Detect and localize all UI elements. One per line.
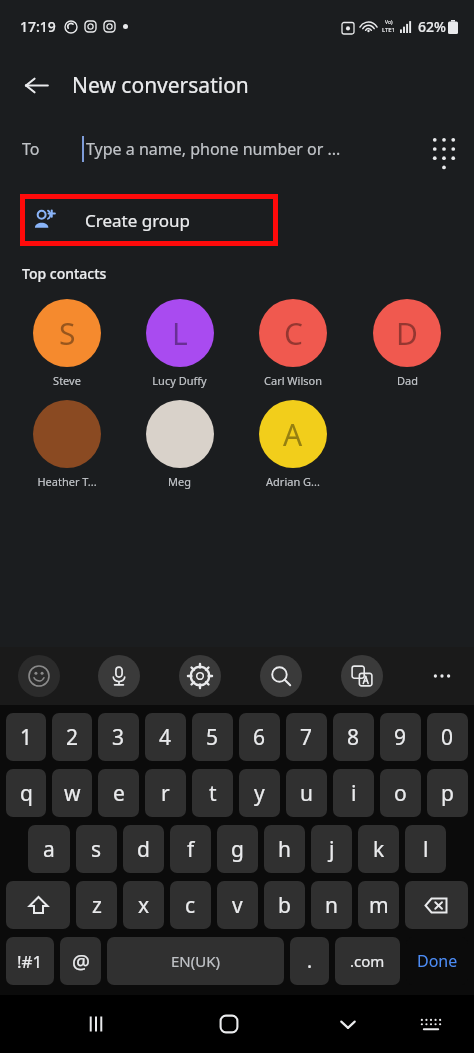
button[interactable]: 5 (192, 713, 233, 761)
button[interactable]: b (264, 881, 305, 929)
staticText: 5 (206, 723, 219, 752)
button[interactable]: Backspace (405, 881, 468, 929)
button[interactable]: Keyboard layout (408, 1001, 454, 1047)
button[interactable]: l (405, 825, 446, 873)
staticText: .com (350, 951, 385, 971)
staticText: a (43, 835, 55, 864)
button[interactable]: d (123, 825, 164, 873)
button[interactable]: r (145, 769, 186, 817)
button[interactable]: y (239, 769, 280, 817)
button[interactable]: v (217, 881, 258, 929)
staticText: q (20, 779, 33, 808)
button[interactable]: More options (422, 656, 462, 696)
button[interactable]: a (28, 825, 70, 873)
button[interactable]: To (0, 118, 474, 180)
button[interactable]: A (236, 400, 350, 489)
button[interactable]: Heather T... (10, 400, 123, 489)
button[interactable]: . (290, 937, 329, 985)
staticText: LTE1 (382, 26, 396, 34)
staticText: b (278, 891, 291, 920)
button[interactable]: Voice input (98, 655, 140, 697)
button[interactable]: !#1 (6, 937, 54, 985)
button[interactable]: L (123, 299, 236, 388)
button[interactable]: x (123, 881, 164, 929)
staticText: D (396, 313, 418, 354)
staticText: Carl Wilson (264, 373, 322, 388)
button[interactable]: Recents (73, 1001, 119, 1047)
button[interactable]: EN(UK) (107, 937, 284, 985)
button[interactable]: D (350, 299, 464, 388)
button[interactable]: 0 (427, 713, 468, 761)
staticText: 7 (300, 723, 313, 752)
button[interactable]: 3 (98, 713, 139, 761)
button[interactable]: Done (406, 937, 468, 985)
staticText: w (64, 779, 81, 808)
button[interactable]: 8 (333, 713, 374, 761)
staticText: h (278, 835, 291, 864)
button[interactable]: m (358, 881, 399, 929)
staticText: L (172, 313, 188, 354)
staticText: n (325, 891, 338, 920)
button[interactable]: S (10, 299, 123, 388)
staticText: EN(UK) (171, 951, 220, 971)
staticText: Adrian G... (266, 474, 320, 489)
button[interactable]: @ (60, 937, 101, 985)
staticText: Done (417, 950, 458, 972)
staticText: l (423, 835, 429, 864)
staticText: 0 (441, 723, 454, 752)
staticText: v (232, 891, 243, 920)
button[interactable]: t (192, 769, 233, 817)
button[interactable]: Create group (25, 199, 273, 241)
button[interactable]: q (6, 769, 46, 817)
staticText: Lucy Duffy (152, 373, 207, 388)
button[interactable]: o (380, 769, 421, 817)
button[interactable]: n (311, 881, 352, 929)
button[interactable]: s (76, 825, 117, 873)
button[interactable]: 1 (6, 713, 46, 761)
button[interactable]: .com (335, 937, 400, 985)
button[interactable]: 2 (52, 713, 92, 761)
staticText: t (209, 779, 217, 808)
staticText: o (394, 779, 407, 808)
button[interactable]: 4 (145, 713, 186, 761)
staticText: 6 (253, 723, 266, 752)
button[interactable]: Back (12, 61, 60, 109)
button[interactable]: f (170, 825, 211, 873)
staticText: k (373, 835, 385, 864)
button[interactable]: p (427, 769, 468, 817)
staticText: 3 (112, 723, 125, 752)
button[interactable]: w (52, 769, 92, 817)
staticText: Dad (397, 373, 418, 388)
button[interactable]: Hide keyboard (325, 1001, 371, 1047)
staticText: u (300, 779, 313, 808)
staticText: 1 (20, 723, 33, 752)
button[interactable]: j (311, 825, 352, 873)
staticText: Top contacts (22, 264, 107, 283)
button[interactable]: Shift (6, 881, 70, 929)
button[interactable]: Home (206, 1001, 252, 1047)
staticText: Meg (168, 474, 191, 489)
button[interactable]: Search (260, 655, 302, 697)
button[interactable]: k (358, 825, 399, 873)
button[interactable]: 6 (239, 713, 280, 761)
button[interactable]: Emoji (18, 655, 60, 697)
button[interactable]: 7 (286, 713, 327, 761)
button[interactable]: h (264, 825, 305, 873)
button[interactable]: z (76, 881, 117, 929)
button[interactable]: g (217, 825, 258, 873)
button[interactable]: 9 (380, 713, 421, 761)
button[interactable]: c (170, 881, 211, 929)
button[interactable]: Dial pad (420, 125, 468, 173)
button[interactable]: e (98, 769, 139, 817)
button[interactable]: u (286, 769, 327, 817)
button[interactable]: Translate (341, 655, 383, 697)
button[interactable]: Meg (123, 400, 236, 489)
staticText: @ (72, 948, 90, 975)
staticText: c (185, 891, 196, 920)
button[interactable]: i (333, 769, 374, 817)
staticText: g (231, 835, 244, 864)
staticText: 8 (347, 723, 360, 752)
button[interactable]: C (236, 299, 350, 388)
staticText: r (161, 779, 170, 808)
button[interactable]: Keyboard settings (179, 655, 221, 697)
